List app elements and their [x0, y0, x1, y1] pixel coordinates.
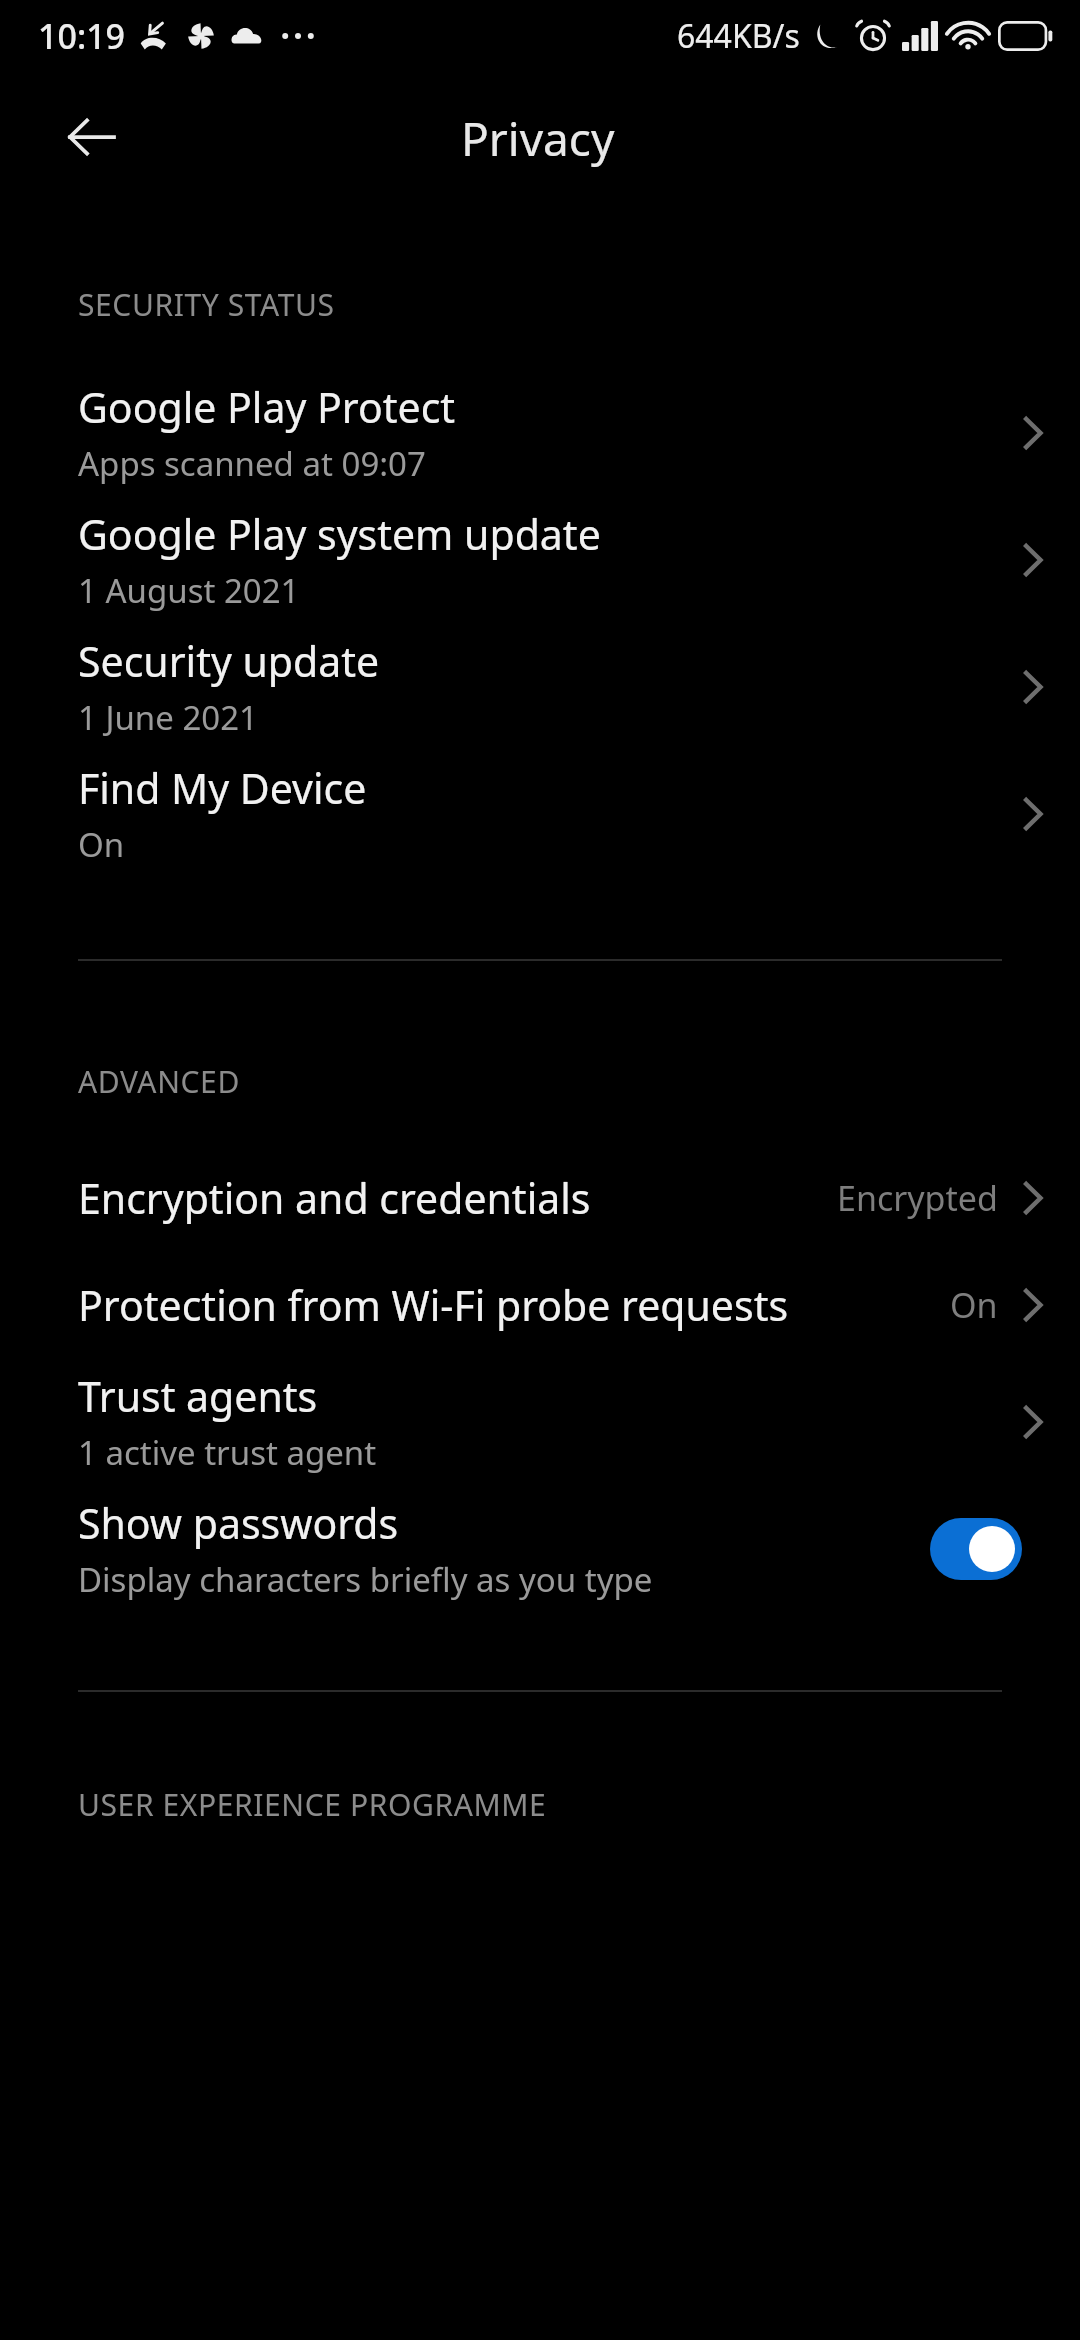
button[interactable]: Google Play system update [0, 496, 1080, 623]
staticText: Protection from Wi-Fi probe requests [78, 1277, 789, 1333]
button[interactable]: Google Play Protect [0, 369, 1080, 496]
staticText: Encrypted [837, 1175, 998, 1221]
staticText: 1 August 2021 [78, 568, 300, 613]
staticText: SECURITY STATUS [78, 284, 335, 325]
button[interactable]: Protection from Wi-Fi probe requests [0, 1251, 1080, 1358]
staticText: Show passwords [78, 1495, 399, 1551]
staticText: ADVANCED [78, 1061, 240, 1102]
button[interactable]: Encryption and credentials [0, 1144, 1080, 1251]
button[interactable]: Show passwords toggle [930, 1518, 1022, 1580]
button[interactable]: Find My Device [0, 750, 1080, 877]
staticText: 1 active trust agent [78, 1430, 377, 1475]
staticText: 10:19 [38, 13, 126, 59]
staticText: Encryption and credentials [78, 1170, 591, 1226]
staticText: On [78, 822, 125, 867]
button[interactable]: Trust agents [0, 1358, 1080, 1485]
staticText: Security update [78, 633, 380, 689]
button[interactable]: Security update [0, 623, 1080, 750]
staticText: Privacy [461, 107, 615, 170]
staticText: Trust agents [78, 1368, 318, 1424]
staticText: USER EXPERIENCE PROGRAMME [78, 1784, 547, 1825]
button[interactable]: Show passwords [0, 1485, 1080, 1612]
staticText: Apps scanned at 09:07 [78, 441, 426, 486]
staticText: Find My Device [78, 760, 367, 816]
staticText: 644KB/s [677, 14, 800, 58]
button[interactable]: Back [50, 95, 134, 179]
staticText: Display characters briefly as you type [78, 1557, 653, 1602]
staticText: Google Play system update [78, 506, 601, 562]
staticText: 1 June 2021 [78, 695, 258, 740]
staticText: Google Play Protect [78, 379, 456, 435]
staticText: On [950, 1282, 998, 1328]
